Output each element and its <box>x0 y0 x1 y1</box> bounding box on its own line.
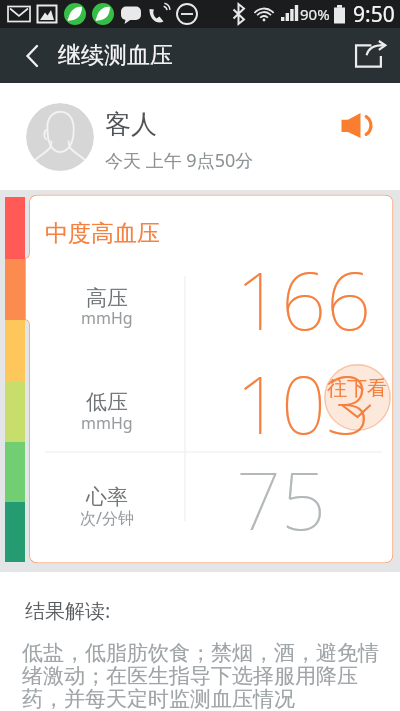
staticText: 高压 <box>86 285 128 311</box>
staticText: 中度高血压 <box>45 219 160 248</box>
staticText: 低盐，低脂肪饮食；禁烟，酒，避免情 绪激动；在医生指导下选择服用降压 药，并每天… <box>22 640 379 711</box>
button[interactable]: Scroll down for more <box>324 364 391 431</box>
staticText: 客人 <box>105 108 157 141</box>
button[interactable]: Back <box>6 28 58 83</box>
staticText: 90% <box>300 4 330 24</box>
staticText: mmHg <box>81 412 133 434</box>
staticText: 75 <box>236 446 327 554</box>
staticText: 次/分钟 <box>80 507 134 529</box>
staticText: 往下看 <box>327 376 387 401</box>
button[interactable]: Play result audio <box>326 101 378 153</box>
staticText: 低压 <box>86 389 128 415</box>
staticText: mmHg <box>81 307 133 329</box>
staticText: 结果解读: <box>25 597 111 624</box>
staticText: 166 <box>236 246 372 354</box>
staticText: 心率 <box>86 484 128 510</box>
staticText: 103 <box>236 350 372 458</box>
staticText: 继续测血压 <box>58 41 173 70</box>
staticText: 今天 上午 9点50分 <box>105 148 254 173</box>
button[interactable]: Share <box>345 28 395 83</box>
staticText: 9:50 <box>353 0 395 28</box>
